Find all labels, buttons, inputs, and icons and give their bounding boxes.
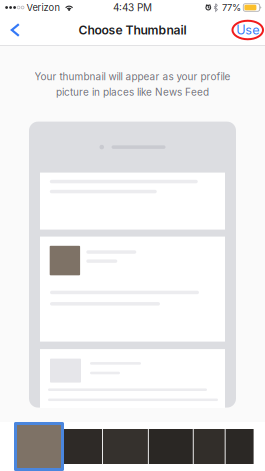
staticText: Verizon [27,2,61,13]
staticText: 77% [222,2,241,13]
button[interactable]: Back [0,17,36,43]
staticText: picture in places like News Feed [56,86,209,98]
staticText: Use [236,22,259,38]
staticText: Your thumbnail will appear as your profi… [34,70,230,83]
staticText: Choose Thumbnail [78,23,186,37]
button[interactable]: Selected thumbnail frame [14,422,64,471]
button[interactable]: Video frame 3 [103,429,148,464]
button[interactable]: Use [231,17,265,43]
button[interactable]: Video frame 5 [194,429,225,464]
button[interactable]: Video frame 4 [149,429,193,464]
button[interactable]: Video frame 6 [226,429,254,464]
staticText: 4:43 PM [113,1,152,14]
